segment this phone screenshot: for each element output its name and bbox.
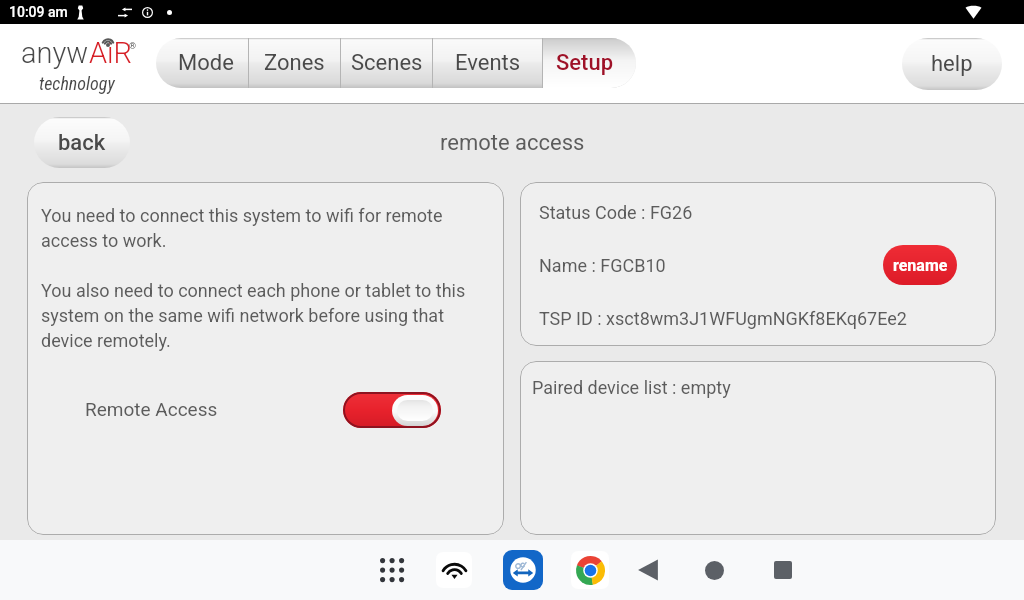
button[interactable]: back	[34, 117, 130, 168]
staticText: anyw	[21, 36, 89, 70]
staticText: AiR	[89, 36, 133, 70]
staticText: You need to connect this system to wifi …	[41, 205, 466, 351]
button[interactable]: QuickSupport	[503, 550, 543, 590]
button[interactable]: All apps	[370, 553, 414, 587]
staticText: TSP ID : xsct8wm3J1WFUgmNGKf8EKq67Ee2	[539, 308, 907, 329]
staticText: ®	[129, 41, 137, 52]
button[interactable]: Chrome	[571, 551, 609, 589]
button[interactable]: rename	[883, 245, 957, 285]
staticText: back	[58, 130, 106, 156]
button[interactable]: Home	[692, 550, 736, 590]
button[interactable]: Recent apps	[761, 550, 805, 590]
button[interactable]: Remote Access toggle	[343, 392, 441, 428]
button[interactable]: Scenes	[341, 38, 432, 88]
button[interactable]: Mode	[156, 38, 248, 88]
staticText: 10:09 am	[9, 4, 68, 20]
staticText: Scenes	[351, 50, 423, 76]
button[interactable]: help	[902, 38, 1002, 90]
staticText: Name : FGCB10	[539, 255, 666, 276]
button[interactable]: Back	[626, 550, 670, 590]
staticText: help	[931, 51, 973, 77]
button[interactable]: Zones	[249, 38, 340, 88]
staticText: rename	[893, 256, 948, 275]
staticText: technology	[39, 73, 115, 94]
staticText: Paired device list : empty	[532, 377, 731, 398]
staticText: Mode	[178, 50, 234, 76]
staticText: Setup	[556, 50, 614, 76]
staticText: remote access	[440, 130, 585, 156]
staticText: Events	[455, 50, 521, 76]
button[interactable]: Events	[433, 38, 542, 88]
staticText: Status Code : FG26	[539, 202, 693, 223]
staticText: Zones	[264, 50, 325, 76]
button[interactable]: Wifi settings	[436, 552, 472, 588]
button[interactable]: Setup	[543, 38, 636, 88]
staticText: Remote Access	[85, 398, 218, 420]
